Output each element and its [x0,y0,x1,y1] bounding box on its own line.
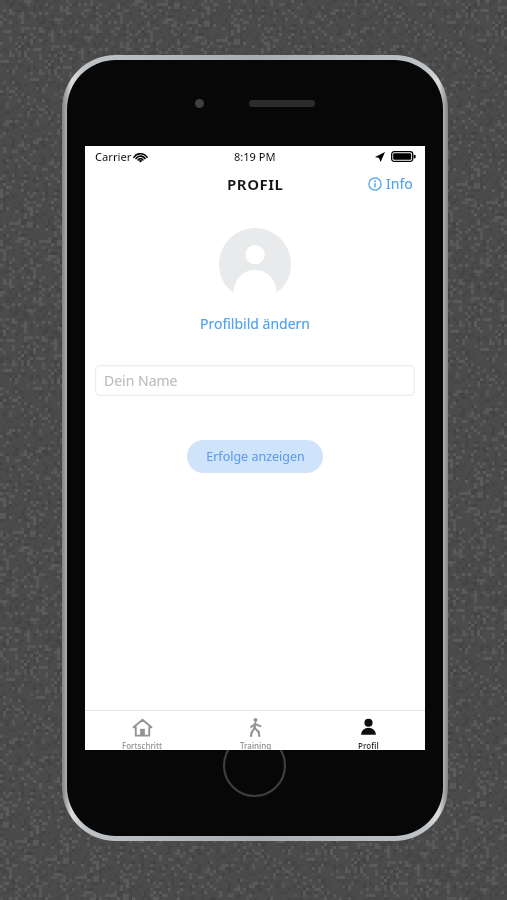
staticText: Profilbild ändern [200,314,311,333]
button[interactable]: Profilbild ändern [85,314,425,333]
button[interactable]: Dein Name [95,365,415,396]
staticText: Erfolge anzeigen [206,448,305,465]
staticText: 8:19 PM [234,149,276,164]
button[interactable]: Profil [312,711,425,750]
staticText: Info [386,174,413,193]
button[interactable]: Change profile picture [219,228,291,300]
staticText: Training [240,740,272,750]
staticText: Carrier [95,149,132,164]
staticText: Fortschritt [122,740,163,750]
button[interactable]: Home button [223,734,286,797]
staticText: Profil [358,740,379,750]
button[interactable]: Fortschritt [85,711,199,750]
staticText: Dein Name [104,371,178,390]
staticText: PROFIL [227,174,284,194]
button[interactable]: Erfolge anzeigen [187,440,323,473]
button[interactable]: Info [368,174,413,193]
button[interactable]: Training [199,711,312,750]
